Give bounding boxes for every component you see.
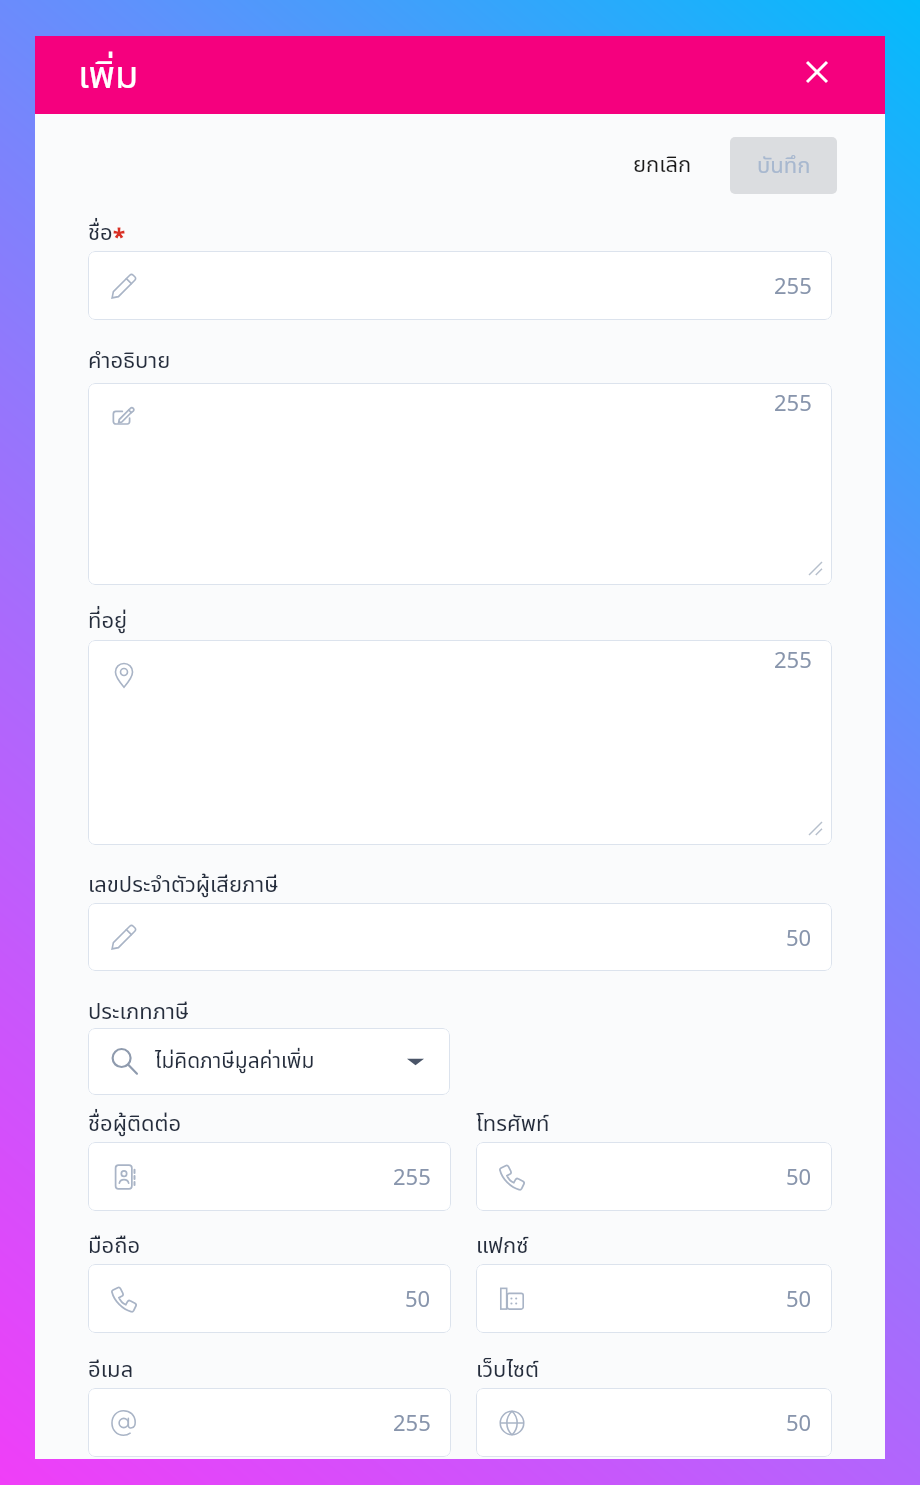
button[interactable]: 50 — [88, 903, 832, 971]
staticText: เว็บไซต์ — [476, 1354, 540, 1387]
staticText: ประเภทภาษี — [88, 996, 189, 1029]
staticText: 50 — [786, 1162, 812, 1195]
button[interactable]: ยกเลิก — [617, 142, 708, 188]
staticText: ชื่อผู้ติดต่อ — [88, 1108, 182, 1141]
button[interactable]: 50 — [476, 1388, 832, 1457]
staticText: 255 — [774, 645, 812, 678]
button[interactable]: 50 — [476, 1264, 832, 1333]
staticText: 255 — [774, 271, 812, 304]
staticText: ชื่อ — [88, 217, 113, 250]
button[interactable]: บันทึก — [730, 137, 837, 194]
staticText: คำอธิบาย — [88, 345, 171, 378]
button[interactable]: 255 — [88, 1142, 451, 1211]
button[interactable]: 255 — [88, 1388, 451, 1457]
staticText: ยกเลิก — [633, 149, 692, 182]
button[interactable]: 255 — [88, 640, 832, 845]
staticText: 50 — [786, 1284, 812, 1317]
staticText: * — [113, 221, 126, 254]
staticText: เลขประจำตัวผู้เสียภาษี — [88, 869, 279, 902]
button[interactable]: Close — [795, 50, 839, 94]
staticText: 255 — [774, 388, 812, 421]
staticText: โทรศัพท์ — [476, 1108, 550, 1141]
button[interactable]: 255 — [88, 383, 832, 585]
staticText: 50 — [786, 1408, 812, 1441]
button[interactable]: ไม่คิดภาษีมูลค่าเพิ่ม — [88, 1028, 450, 1095]
button[interactable]: 255 — [88, 251, 832, 320]
button[interactable]: 50 — [88, 1264, 451, 1333]
staticText: มือถือ — [88, 1230, 141, 1263]
staticText: 255 — [393, 1162, 431, 1195]
staticText: 255 — [393, 1408, 431, 1441]
staticText: บันทึก — [757, 150, 811, 183]
button[interactable]: 50 — [476, 1142, 832, 1211]
staticText: เพิ่ม — [78, 48, 139, 105]
staticText: 50 — [405, 1284, 431, 1317]
staticText: ที่อยู่ — [88, 605, 128, 638]
staticText: ไม่คิดภาษีมูลค่าเพิ่ม — [155, 1046, 315, 1078]
staticText: อีเมล — [88, 1354, 134, 1387]
staticText: 50 — [786, 923, 812, 956]
staticText: แฟกซ์ — [476, 1230, 529, 1263]
